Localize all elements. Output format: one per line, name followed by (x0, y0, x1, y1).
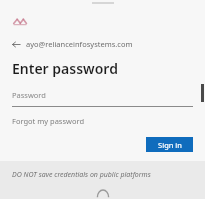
button[interactable]: Password (12, 90, 193, 107)
staticText: Enter password (12, 59, 118, 78)
button[interactable]: Sign in (146, 137, 193, 152)
staticText: Forgot my password (12, 116, 85, 126)
staticText: DO NOT save credentials on public platfo… (12, 170, 151, 180)
staticText: ayo@relianceinfosystems.com (26, 39, 133, 49)
staticText: Password (12, 90, 46, 100)
button[interactable]: Back (12, 38, 133, 50)
button[interactable]: Forgot my password (12, 116, 85, 126)
other: Back (12, 40, 21, 49)
staticText: Sign in (158, 140, 182, 150)
